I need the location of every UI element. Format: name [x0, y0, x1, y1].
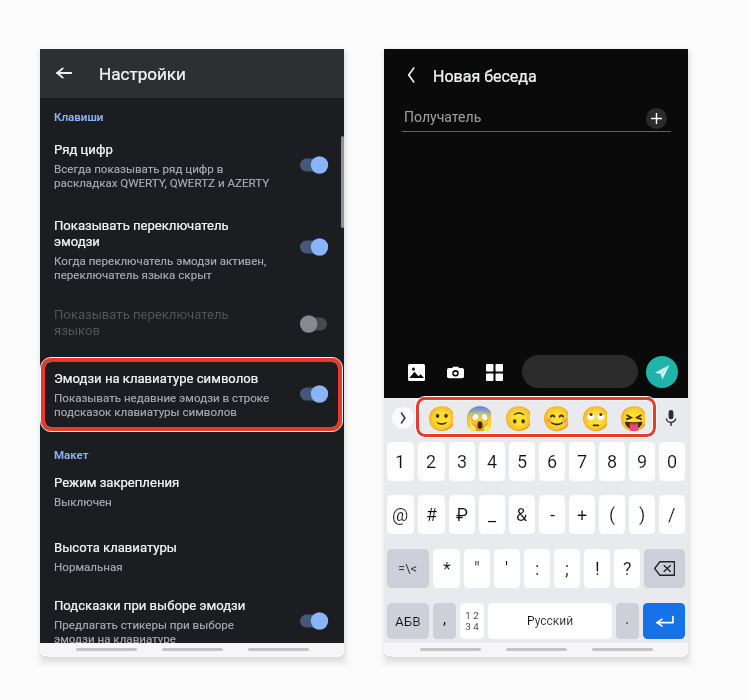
button[interactable]: Показывать переключатель эмодзи — [40, 218, 344, 282]
button[interactable]: ₽ — [449, 495, 475, 534]
button[interactable]: 2 — [418, 442, 445, 481]
button[interactable]: Back — [394, 57, 428, 93]
button[interactable]: 4 — [479, 442, 505, 481]
button[interactable]: Эмодзи на клавиатуре символов — [40, 371, 344, 419]
staticText: 2 — [426, 451, 437, 472]
button[interactable]: Ряд цифр — [40, 142, 344, 190]
button[interactable]: : — [524, 549, 550, 588]
button[interactable]: Backspace — [644, 549, 685, 588]
button[interactable]: Enter — [643, 603, 685, 639]
button[interactable]: " — [464, 549, 490, 588]
button[interactable]: 🙃 — [504, 405, 530, 431]
staticText: " — [474, 558, 480, 579]
button[interactable]: @ — [387, 495, 414, 534]
staticText: Показывать переключатель языков — [54, 307, 229, 338]
staticText: Подсказки при выборе эмодзи — [54, 598, 246, 613]
button[interactable]: Высота клавиатуры — [40, 540, 344, 574]
button[interactable]: Apps — [483, 361, 505, 383]
staticText: 1 — [395, 451, 406, 472]
staticText: 1 2 3 4 — [465, 610, 479, 632]
staticText: 7 — [577, 451, 588, 472]
button[interactable]: 😝 — [619, 405, 645, 431]
button[interactable]: & — [509, 495, 535, 534]
button[interactable]: # — [418, 495, 445, 534]
button[interactable]: . — [616, 603, 639, 639]
button[interactable]: ( — [599, 495, 625, 534]
staticText: Показывать недавние эмодзи в строке подс… — [54, 391, 270, 419]
button[interactable]: ) — [629, 495, 655, 534]
staticText: , — [443, 609, 447, 628]
staticText: Предлагать стикеры при выборе эмодзи на … — [54, 618, 234, 646]
staticText: ! — [595, 558, 600, 579]
button[interactable]: ? — [614, 549, 640, 588]
staticText: Новая беседа — [433, 67, 537, 86]
button[interactable]: Toggle — [300, 237, 332, 257]
button[interactable]: Подсказки при выборе эмодзи — [40, 598, 344, 646]
button[interactable]: =\< — [387, 549, 429, 588]
staticText: 9 — [637, 451, 648, 472]
button[interactable]: ; — [554, 549, 580, 588]
button[interactable]: 8 — [599, 442, 625, 481]
button[interactable] — [522, 355, 638, 388]
button[interactable]: Toggle — [300, 155, 332, 175]
button[interactable]: Voice input — [658, 405, 684, 431]
button[interactable]: Показывать переключатель языков — [40, 307, 344, 338]
staticText: Режим закрепления — [54, 475, 180, 490]
button[interactable]: - — [539, 495, 565, 534]
button[interactable]: Режим закрепления — [40, 475, 344, 509]
button[interactable]: , — [433, 603, 456, 639]
staticText: ' — [505, 558, 509, 579]
button[interactable]: 🙂 — [427, 405, 453, 431]
staticText: @ — [392, 504, 409, 525]
button[interactable]: Back — [43, 52, 85, 94]
button[interactable]: + — [569, 495, 595, 534]
staticText: Когда переключатель эмодзи активен, пере… — [54, 254, 267, 282]
staticText: Клавиши — [54, 110, 104, 123]
button[interactable]: Expand suggestions — [392, 407, 414, 429]
button[interactable]: 1 2 3 4 — [460, 603, 484, 639]
button[interactable]: Toggle — [300, 611, 332, 631]
staticText: 🙃 — [504, 405, 530, 431]
button[interactable]: 1 — [387, 442, 414, 481]
staticText: Показывать переключатель эмодзи — [54, 218, 229, 249]
staticText: Высота клавиатуры — [54, 540, 177, 555]
staticText: ; — [565, 558, 569, 579]
button[interactable]: 6 — [539, 442, 565, 481]
staticText: + — [577, 504, 588, 525]
button[interactable]: Add recipient — [646, 108, 667, 129]
button[interactable]: / — [659, 495, 685, 534]
button[interactable]: Русский — [488, 603, 612, 639]
button[interactable]: 🙄 — [581, 405, 607, 431]
staticText: 😊 — [542, 405, 568, 431]
button[interactable]: 0 — [659, 442, 685, 481]
button[interactable]: 3 — [449, 442, 475, 481]
button[interactable]: 5 — [509, 442, 535, 481]
button[interactable]: 😱 — [465, 405, 491, 431]
button[interactable]: Toggle — [300, 314, 332, 334]
staticText: 3 — [457, 451, 468, 472]
staticText: Макет — [54, 448, 89, 461]
staticText: : — [535, 558, 540, 579]
button[interactable]: 7 — [569, 442, 595, 481]
button[interactable]: Send — [646, 356, 678, 388]
button[interactable]: 9 — [629, 442, 655, 481]
button[interactable]: _ — [479, 495, 505, 534]
button[interactable]: ! — [584, 549, 610, 588]
button[interactable]: ' — [494, 549, 520, 588]
staticText: 6 — [547, 451, 558, 472]
staticText: ( — [609, 504, 616, 525]
button[interactable]: Toggle — [300, 384, 332, 404]
staticText: . — [625, 609, 630, 628]
staticText: Всегда показывать ряд цифр в раскладках … — [54, 162, 270, 190]
button[interactable]: 😊 — [542, 405, 568, 431]
button[interactable]: Gallery — [405, 361, 427, 383]
button[interactable]: * — [433, 549, 460, 588]
staticText: 4 — [487, 451, 498, 472]
staticText: 😱 — [465, 405, 491, 431]
staticText: Ряд цифр — [54, 142, 113, 157]
button[interactable]: Camera — [444, 361, 466, 383]
button[interactable]: АБВ — [387, 603, 429, 639]
staticText: 5 — [517, 451, 528, 472]
staticText: - — [550, 504, 555, 525]
staticText: Нормальная — [54, 560, 123, 574]
